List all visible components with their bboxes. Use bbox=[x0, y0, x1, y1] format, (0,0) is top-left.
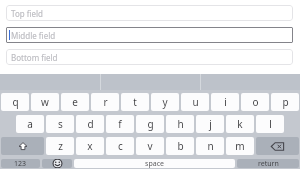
button[interactable]: p bbox=[271, 93, 299, 111]
staticText: space bbox=[145, 159, 164, 168]
staticText: return bbox=[258, 159, 279, 168]
button[interactable]: space bbox=[74, 159, 235, 168]
button[interactable]: a bbox=[16, 115, 44, 133]
button[interactable]: u bbox=[181, 93, 209, 111]
staticText: v bbox=[147, 139, 153, 153]
staticText: d bbox=[87, 117, 94, 131]
staticText: r bbox=[103, 95, 108, 109]
button[interactable]: return bbox=[237, 159, 299, 168]
staticText: Bottom field bbox=[11, 52, 58, 63]
staticText: k bbox=[237, 117, 243, 131]
button[interactable]: l bbox=[256, 115, 284, 133]
button[interactable]: c bbox=[106, 137, 134, 155]
staticText: b bbox=[177, 139, 184, 153]
button[interactable]: w bbox=[31, 93, 59, 111]
button[interactable]: n bbox=[196, 137, 224, 155]
button[interactable]: j bbox=[196, 115, 224, 133]
staticText: Middle field bbox=[11, 30, 56, 41]
staticText: q bbox=[12, 95, 19, 109]
staticText: f bbox=[118, 117, 122, 131]
staticText: 123 bbox=[14, 159, 27, 168]
button[interactable]: v bbox=[136, 137, 164, 155]
staticText: n bbox=[207, 139, 214, 153]
button[interactable]: Shift bbox=[1, 137, 44, 155]
button[interactable]: t bbox=[121, 93, 149, 111]
button[interactable]: r bbox=[91, 93, 119, 111]
staticText: h bbox=[177, 117, 184, 131]
button[interactable]: i bbox=[211, 93, 239, 111]
staticText: x bbox=[87, 139, 93, 153]
button[interactable]: Bottom field bbox=[6, 49, 293, 65]
staticText: g bbox=[147, 117, 154, 131]
button[interactable]: Middle field bbox=[6, 27, 293, 43]
staticText: i bbox=[224, 95, 227, 109]
button[interactable]: x bbox=[76, 137, 104, 155]
button[interactable]: q bbox=[1, 93, 29, 111]
button[interactable]: Top field bbox=[6, 5, 293, 21]
staticText: y bbox=[162, 95, 168, 109]
button[interactable]: e bbox=[61, 93, 89, 111]
button[interactable]: y bbox=[151, 93, 179, 111]
button[interactable]: k bbox=[226, 115, 254, 133]
button[interactable]: Emoji bbox=[42, 159, 72, 168]
staticText: u bbox=[192, 95, 199, 109]
button[interactable]: 123 bbox=[1, 159, 40, 168]
staticText: t bbox=[133, 95, 137, 109]
staticText: s bbox=[58, 117, 63, 131]
button[interactable]: o bbox=[241, 93, 269, 111]
staticText: l bbox=[269, 117, 272, 131]
staticText: c bbox=[118, 139, 123, 153]
staticText: a bbox=[27, 117, 33, 131]
staticText: z bbox=[58, 139, 63, 153]
button[interactable]: Backspace bbox=[256, 137, 299, 155]
staticText: j bbox=[209, 117, 212, 131]
staticText: Top field bbox=[11, 8, 44, 19]
staticText: e bbox=[72, 95, 78, 109]
staticText: p bbox=[282, 95, 289, 109]
button[interactable]: s bbox=[46, 115, 74, 133]
staticText: w bbox=[41, 95, 49, 109]
staticText: m bbox=[235, 139, 245, 153]
button[interactable]: f bbox=[106, 115, 134, 133]
button[interactable]: d bbox=[76, 115, 104, 133]
staticText: o bbox=[252, 95, 259, 109]
button[interactable]: b bbox=[166, 137, 194, 155]
button[interactable]: h bbox=[166, 115, 194, 133]
button[interactable]: z bbox=[46, 137, 74, 155]
button[interactable]: g bbox=[136, 115, 164, 133]
button[interactable]: m bbox=[226, 137, 254, 155]
